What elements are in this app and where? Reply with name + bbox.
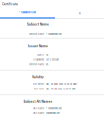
staticText: Not Before	[33, 83, 44, 85]
staticText: Certificate	[2, 2, 18, 6]
staticText: Common Name	[29, 63, 44, 66]
staticText: Let's Encrypt	[46, 58, 59, 61]
staticText: Sat, 04 Jun 2022 12:05:41 GMT	[46, 88, 76, 90]
staticText: DNS Name	[33, 112, 44, 114]
staticText: Validity	[32, 75, 44, 79]
staticText: Organization	[33, 58, 44, 61]
staticText: Subject Name	[27, 23, 49, 26]
staticText: DNS Name	[33, 107, 44, 110]
staticText: R3	[46, 63, 48, 66]
staticText: *.thunderbird.net	[46, 107, 62, 110]
staticText: Not After	[34, 88, 44, 90]
staticText: R3	[78, 12, 80, 15]
button[interactable]: R3	[55, 8, 104, 19]
staticText: thunderbird.net	[46, 112, 60, 114]
staticText: Country	[37, 54, 44, 56]
staticText: Common Name	[29, 33, 44, 35]
staticText: *.thunderbird.net	[19, 11, 36, 14]
staticText: Issuer Name	[28, 44, 48, 48]
staticText: Subject Alt Names	[23, 100, 52, 103]
staticText: *.thunderbird.net	[46, 33, 62, 35]
button[interactable]: *.thunderbird.net	[0, 8, 55, 19]
staticText: US	[46, 54, 48, 56]
staticText: Sat, 05 Mar 2022 12:05:42 GMT	[46, 83, 77, 85]
